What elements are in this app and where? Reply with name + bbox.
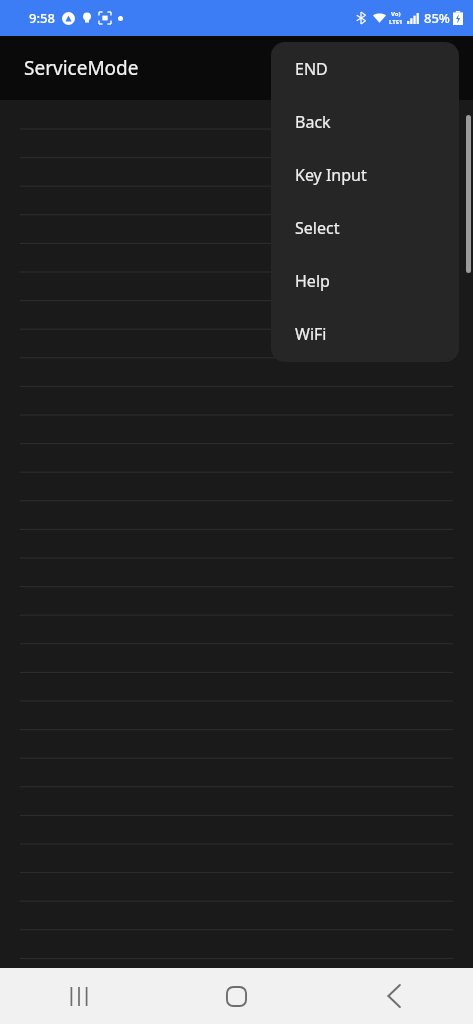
staticText: ServiceMode: [24, 55, 139, 81]
button[interactable]: Recents: [0, 968, 157, 1024]
staticText: Vo): [391, 10, 401, 18]
staticText: Select: [295, 217, 340, 239]
button[interactable]: END: [271, 42, 459, 95]
button[interactable]: Key Input: [271, 148, 459, 201]
staticText: Key Input: [295, 164, 367, 186]
staticText: 9:58: [29, 9, 55, 27]
button[interactable]: Back: [271, 95, 459, 148]
button[interactable]: Help: [271, 254, 459, 307]
button[interactable]: WiFi: [271, 307, 459, 360]
button[interactable]: Select: [271, 201, 459, 254]
staticText: Help: [295, 270, 330, 292]
staticText: Back: [295, 111, 331, 133]
button[interactable]: Back: [315, 968, 473, 1024]
staticText: END: [295, 58, 328, 80]
staticText: LTE1: [389, 18, 403, 26]
button[interactable]: Home: [157, 968, 315, 1024]
staticText: WiFi: [295, 323, 327, 345]
staticText: 85%: [424, 9, 450, 27]
